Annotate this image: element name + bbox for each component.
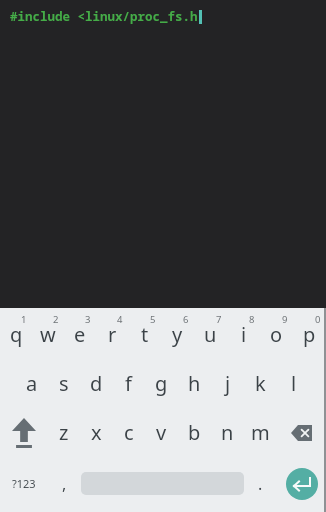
staticText: 5 [150,313,156,326]
button[interactable]: e [64,310,96,359]
button[interactable]: g [145,359,178,408]
staticText: y [172,321,183,348]
button[interactable]: . [244,459,277,508]
button[interactable]: b [178,408,211,457]
button[interactable] [277,408,326,457]
button[interactable]: n [211,408,244,457]
button[interactable]: k [244,359,277,408]
staticText: l [291,370,297,397]
button[interactable]: w [32,310,64,359]
button[interactable]: m [244,408,277,457]
button[interactable]: y [161,310,194,359]
button[interactable]: j [211,359,244,408]
button[interactable]: f [112,359,145,408]
button[interactable] [81,459,244,508]
button[interactable]: r [96,310,128,359]
button[interactable]: d [80,359,112,408]
staticText: q [10,321,23,348]
staticText: ?123 [12,476,36,491]
staticText: 4 [117,313,123,326]
button[interactable] [0,408,48,457]
staticText: z [59,419,69,446]
staticText: 6 [183,313,189,326]
staticText: u [204,321,217,348]
staticText: 2 [53,313,59,326]
staticText: t [141,321,149,348]
staticText: 1 [21,313,27,326]
staticText: w [40,321,56,348]
staticText: #include <linux/proc_fs.h [10,8,198,25]
button[interactable]: h [178,359,211,408]
staticText: , [62,473,67,495]
staticText: j [225,370,231,397]
staticText: f [125,370,132,397]
button[interactable]: i [227,310,260,359]
staticText: m [251,419,270,446]
button[interactable]: s [48,359,80,408]
staticText: i [241,321,247,348]
staticText: 7 [216,313,222,326]
staticText: d [90,370,103,397]
button[interactable]: t [128,310,161,359]
button[interactable]: c [112,408,145,457]
staticText: c [124,419,134,446]
staticText: n [221,419,234,446]
staticText: 9 [282,313,288,326]
button[interactable]: a [16,359,48,408]
button[interactable]: v [145,408,178,457]
staticText: g [155,370,168,397]
staticText: s [59,370,69,397]
staticText: p [303,321,316,348]
staticText: x [91,419,102,446]
staticText: . [258,473,263,495]
button[interactable]: ?123 [0,459,48,508]
staticText: h [188,370,201,397]
button[interactable]: l [277,359,310,408]
staticText: 8 [249,313,255,326]
staticText: e [74,321,86,348]
staticText: 3 [85,313,91,326]
button[interactable]: q [0,310,32,359]
staticText: v [156,419,167,446]
button[interactable]: , [48,459,81,508]
staticText: r [108,321,117,348]
button[interactable]: u [194,310,227,359]
button[interactable]: x [80,408,112,457]
staticText: k [255,370,266,397]
staticText: o [270,321,283,348]
button[interactable]: z [48,408,80,457]
staticText: b [188,419,201,446]
button[interactable]: p [293,310,326,359]
button[interactable]: o [260,310,293,359]
button[interactable] [277,459,326,508]
staticText: 0 [315,313,321,326]
staticText: a [26,370,38,397]
